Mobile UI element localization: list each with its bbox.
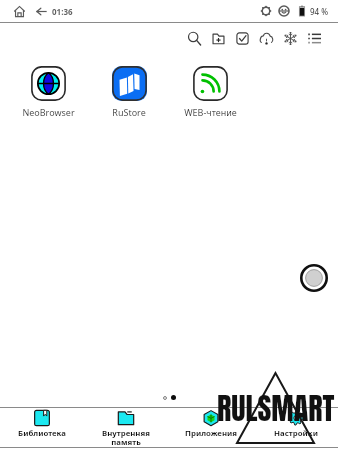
button[interactable]: Настройки	[253, 406, 338, 449]
button[interactable]: Внутренняя память	[84, 406, 168, 449]
button[interactable]: Select items	[230, 27, 254, 50]
staticText: RULSMART	[217, 386, 335, 431]
button[interactable]: Quick menu	[300, 264, 328, 292]
button[interactable]: Приложения	[168, 406, 253, 449]
button[interactable]: Back	[34, 4, 48, 18]
button[interactable]: Библиотека	[0, 406, 84, 449]
staticText: NeoBrowser	[22, 106, 75, 118]
staticText: Внутренняя память	[102, 428, 150, 447]
staticText: RuStore	[112, 106, 146, 118]
button[interactable]: Download	[254, 27, 278, 50]
staticText: Настройки	[274, 428, 318, 439]
staticText: Приложения	[185, 428, 237, 439]
staticText: 01:36	[52, 6, 73, 17]
button[interactable]: Refresh screen	[278, 27, 302, 50]
staticText: 94 %	[310, 6, 329, 17]
button[interactable]: Home	[11, 3, 27, 19]
button[interactable]: WEB-чтение	[170, 66, 250, 118]
staticText: WEB-чтение	[184, 106, 237, 118]
button[interactable]: Search	[182, 27, 206, 50]
staticText: Библиотека	[18, 428, 66, 439]
button[interactable]: RuStore	[89, 66, 169, 118]
button[interactable]: NeoBrowser	[8, 66, 88, 118]
button[interactable]: Menu	[302, 27, 326, 50]
button[interactable]: New folder	[206, 27, 230, 50]
